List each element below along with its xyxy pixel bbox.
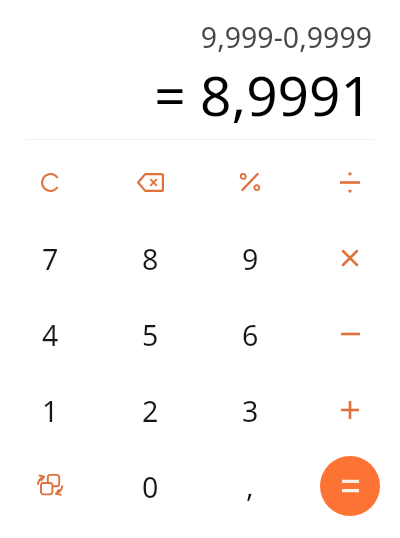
button[interactable]: 5 [100,296,200,372]
staticText: = 8,9991 [154,57,372,132]
button[interactable]: 7 [0,220,100,296]
staticText: 0 [142,467,159,506]
other: Multiply [342,250,358,266]
button[interactable]: 6 [200,296,300,372]
other: Plus [341,401,359,419]
other: Minus [341,325,360,343]
button[interactable]: 4 [0,296,100,372]
button[interactable]: 0 [100,448,200,524]
button[interactable]: , [200,448,300,524]
button[interactable]: Clear [0,144,100,220]
button[interactable]: Divide [300,144,400,220]
staticText: 4 [42,315,59,354]
other: Divide [340,172,360,193]
button[interactable]: 3 [200,372,300,448]
other: Backspace [137,173,164,192]
button[interactable]: Multiply [300,220,400,296]
staticText: , [246,466,254,505]
staticText: 5 [142,315,159,354]
staticText: 3 [242,391,259,430]
button[interactable]: Backspace [100,144,200,220]
staticText: 7 [42,239,59,278]
button[interactable]: Equals [320,456,380,516]
staticText: 2 [142,391,159,430]
button[interactable]: 2 [100,372,200,448]
button[interactable]: Percent [200,144,300,220]
staticText: 9,999-0,9999 [200,18,372,57]
other: Unit converter [36,474,64,497]
other: Percent [240,173,260,191]
other: Clear [41,173,60,192]
button[interactable]: Plus [300,372,400,448]
staticText: 8 [142,239,159,278]
staticText: 6 [242,315,259,354]
button[interactable]: 8 [100,220,200,296]
button[interactable]: 1 [0,372,100,448]
button[interactable]: 9 [200,220,300,296]
button[interactable]: Minus [300,296,400,372]
button[interactable]: Unit converter [0,448,100,524]
staticText: 1 [42,391,59,430]
staticText: 9 [242,239,259,278]
